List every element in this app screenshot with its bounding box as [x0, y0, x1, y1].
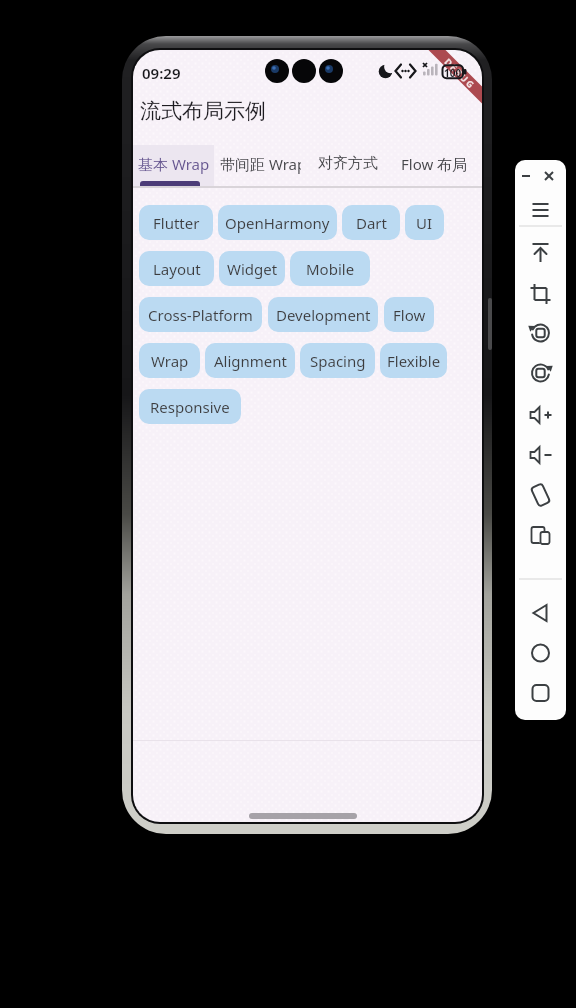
button[interactable]: Wrap: [139, 343, 200, 378]
staticText: Responsive: [150, 397, 230, 417]
button[interactable]: Flexible: [380, 343, 447, 378]
button[interactable]: Cross-Platform: [139, 297, 262, 332]
button[interactable]: [522, 635, 559, 671]
staticText: 流式布局示例: [140, 98, 266, 124]
button[interactable]: OpenHarmony: [218, 205, 337, 240]
button[interactable]: [522, 595, 559, 631]
staticText: OpenHarmony: [225, 213, 330, 233]
staticText: Layout: [153, 259, 201, 279]
staticText: DEBUG: [442, 55, 478, 91]
staticText: Wrap: [151, 351, 189, 371]
button[interactable]: 对齐方式: [307, 145, 388, 186]
button[interactable]: 基本 Wrap: [133, 145, 214, 186]
button[interactable]: Flow: [384, 297, 434, 332]
button[interactable]: Alignment: [205, 343, 295, 378]
staticText: Development: [276, 305, 371, 325]
staticText: 100: [444, 66, 462, 80]
button[interactable]: [522, 517, 559, 553]
button[interactable]: [522, 235, 559, 271]
staticText: 09:29: [142, 63, 181, 83]
button[interactable]: [522, 276, 559, 312]
button[interactable]: Development: [268, 297, 378, 332]
staticText: UI: [416, 213, 433, 233]
staticText: Flexible: [387, 351, 441, 371]
staticText: 带间距 Wrap: [220, 154, 301, 174]
button[interactable]: Widget: [219, 251, 285, 286]
staticText: 基本 Wrap: [138, 154, 210, 174]
button[interactable]: 带间距 Wrap: [220, 145, 301, 186]
button[interactable]: Flow 布局: [394, 145, 475, 186]
staticText: Flutter: [153, 213, 200, 233]
button[interactable]: Layout: [139, 251, 214, 286]
button[interactable]: Flutter: [139, 205, 213, 240]
staticText: Flow 布局: [401, 154, 468, 174]
button[interactable]: [522, 355, 559, 391]
button[interactable]: Responsive: [139, 389, 241, 424]
staticText: Widget: [227, 259, 278, 279]
button[interactable]: [522, 192, 559, 228]
button[interactable]: [522, 437, 559, 473]
button[interactable]: [522, 397, 559, 433]
staticText: Cross-Platform: [148, 305, 253, 325]
button[interactable]: [522, 315, 559, 351]
staticText: Mobile: [306, 259, 355, 279]
button[interactable]: Dart: [342, 205, 400, 240]
staticText: Alignment: [214, 351, 287, 371]
staticText: Spacing: [310, 351, 366, 371]
button[interactable]: [522, 675, 559, 711]
button[interactable]: [540, 167, 558, 185]
staticText: 对齐方式: [318, 154, 378, 173]
staticText: Flow: [393, 305, 426, 325]
button[interactable]: Spacing: [300, 343, 375, 378]
staticText: Dart: [356, 213, 387, 233]
button[interactable]: Mobile: [290, 251, 370, 286]
button[interactable]: [517, 167, 535, 185]
button[interactable]: [522, 477, 559, 513]
button[interactable]: UI: [405, 205, 444, 240]
